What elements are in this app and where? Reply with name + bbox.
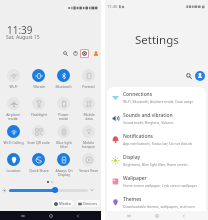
staticText: Wallpaper	[123, 175, 147, 182]
button[interactable]: Wallpaper	[107, 171, 206, 192]
button[interactable]: Search	[184, 71, 194, 81]
button[interactable]: Power mode	[51, 96, 76, 124]
button[interactable]: Portrait	[76, 68, 101, 96]
staticText: Home screen wallpaper, Lock screen wallp…	[123, 183, 198, 188]
button[interactable]: Bluetooth	[51, 68, 76, 96]
staticText: Media	[59, 201, 71, 206]
button[interactable]: Flashlight	[26, 96, 51, 124]
staticText: Brightness, Blue light filter, Home scre…	[123, 162, 188, 167]
staticText: Display	[123, 154, 141, 161]
staticText: Sat, August 15	[6, 34, 40, 41]
button[interactable]: Media	[52, 200, 73, 207]
staticText: Wi-Fi Calling	[3, 140, 24, 145]
button[interactable]: Display	[107, 150, 206, 171]
button[interactable]: Devices	[76, 200, 100, 207]
button[interactable]: Wi-Fi Calling	[0, 124, 26, 152]
button[interactable]: Wi-Fi	[0, 68, 26, 96]
staticText: 11:40	[107, 4, 118, 9]
staticText: Flashlight	[31, 112, 47, 117]
button[interactable]: Recents	[19, 212, 27, 220]
button[interactable]: Home	[47, 212, 55, 220]
button[interactable]: Themes	[107, 192, 206, 213]
staticText: Settings	[135, 32, 179, 48]
button[interactable]: Blue light filter	[51, 124, 76, 152]
button[interactable]: Home	[153, 212, 161, 220]
staticText: Sounds and vibration	[123, 112, 173, 119]
staticText: App notifications, Status bar, Do not di…	[123, 141, 193, 146]
staticText: Portrait	[82, 84, 95, 89]
button[interactable]: Search	[60, 48, 70, 58]
button[interactable]: Airplane mode	[0, 96, 26, 124]
staticText: Power mode	[58, 112, 69, 121]
button[interactable]: Back	[74, 212, 82, 220]
button[interactable]: Smart View	[76, 152, 101, 180]
staticText: Connections	[123, 91, 153, 98]
staticText: Vibrate	[33, 84, 45, 89]
staticText: Devices	[83, 201, 98, 206]
staticText: Wi-Fi, Bluetooth, Airplane mode, Data us…	[123, 99, 194, 104]
staticText: Mobile hotspot	[82, 140, 95, 149]
staticText: Sound mode, Ringtone, Volume	[123, 120, 174, 125]
staticText: 11:39	[7, 23, 33, 37]
button[interactable]: Account	[195, 71, 205, 81]
button[interactable]: Vibrate	[26, 68, 51, 96]
staticText: Always On Display	[55, 168, 73, 177]
button[interactable]: Mobile hotspot	[76, 124, 101, 152]
staticText: Quick Share	[29, 168, 49, 173]
staticText: Airplane mode	[6, 112, 20, 121]
staticText: Scan QR code	[27, 140, 50, 145]
button[interactable]: Always On Display	[51, 152, 76, 180]
button[interactable]: Sounds and vibration	[107, 108, 206, 129]
button[interactable]: Connections	[107, 87, 206, 108]
staticText: Bluetooth	[55, 84, 72, 89]
staticText: Smart View	[79, 168, 98, 173]
staticText: Mobile data	[83, 112, 95, 121]
staticText: Location	[6, 168, 21, 173]
button[interactable]: Recents	[125, 212, 133, 220]
staticText: Notifications	[123, 133, 153, 140]
button[interactable]: Profile	[91, 49, 100, 58]
button[interactable]: Power off	[70, 48, 80, 58]
staticText: Themes	[123, 196, 142, 203]
staticText: Blue light filter	[56, 140, 72, 149]
button[interactable]: Notifications	[107, 129, 206, 150]
button[interactable]: Back	[180, 212, 188, 220]
button[interactable]: Location	[0, 152, 26, 180]
staticText: Downloadable themes, wallpapers, and ico…	[123, 204, 195, 209]
button[interactable]: Scan QR code	[26, 124, 51, 152]
button[interactable]: Quick Share	[26, 152, 51, 180]
button[interactable]: Settings	[81, 50, 88, 57]
button[interactable]: Mobile data	[76, 96, 101, 124]
staticText: Wi-Fi	[9, 84, 18, 89]
